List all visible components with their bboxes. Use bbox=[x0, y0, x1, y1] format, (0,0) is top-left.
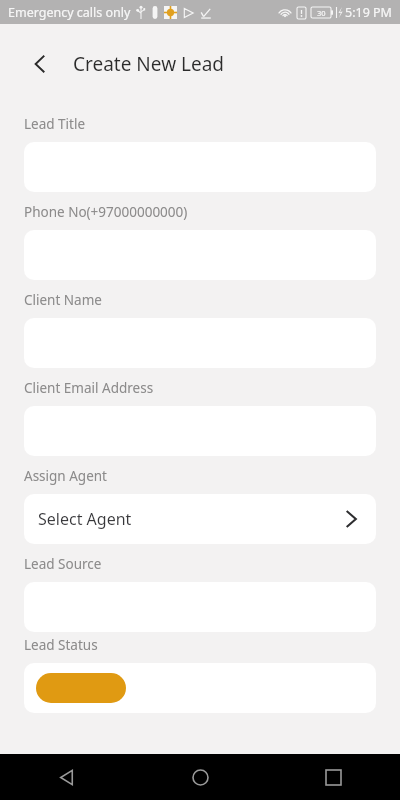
staticText: Select Agent bbox=[38, 508, 340, 530]
button[interactable]: Home bbox=[134, 754, 267, 800]
button[interactable] bbox=[24, 663, 376, 713]
staticText: Create New Lead bbox=[73, 51, 225, 77]
staticText: Emergency calls only bbox=[8, 4, 131, 21]
staticText: Lead Status bbox=[24, 636, 98, 654]
staticText: Phone No(+97000000000) bbox=[24, 203, 188, 221]
button[interactable]: Recent apps bbox=[267, 754, 400, 800]
staticText: Lead Source bbox=[24, 555, 102, 573]
staticText: 30 bbox=[317, 8, 326, 18]
staticText: Lead Title bbox=[24, 115, 86, 133]
staticText: 5:19 PM bbox=[345, 4, 392, 21]
button[interactable]: Back bbox=[0, 754, 134, 800]
button[interactable]: Back bbox=[22, 46, 58, 82]
staticText: Assign Agent bbox=[24, 467, 107, 485]
staticText: Client Name bbox=[24, 291, 102, 309]
button[interactable]: Select Agent bbox=[24, 494, 376, 544]
staticText: Client Email Address bbox=[24, 379, 154, 397]
